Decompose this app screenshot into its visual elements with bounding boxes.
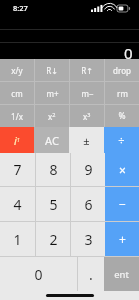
button[interactable]: % — [105, 105, 139, 127]
staticText: 5 — [49, 195, 58, 214]
staticText: x2 — [48, 111, 56, 122]
button[interactable]: rm — [105, 82, 139, 104]
button[interactable]: drop — [105, 59, 139, 81]
staticText: 8 — [49, 160, 58, 179]
button[interactable]: Subtract — [105, 187, 139, 221]
staticText: % — [118, 110, 126, 122]
button[interactable]: x3 — [70, 105, 104, 127]
staticText: ent — [114, 268, 129, 281]
staticText: ± — [83, 133, 90, 148]
button[interactable]: Inverse — [0, 127, 34, 153]
staticText: 9 — [84, 160, 93, 179]
staticText: m+ — [46, 88, 59, 99]
staticText: 3 — [84, 230, 93, 249]
button[interactable]: m+ — [35, 82, 69, 104]
staticText: − — [119, 196, 126, 212]
button[interactable]: 2 — [36, 222, 70, 256]
staticText: x3 — [83, 111, 91, 122]
staticText: 4 — [13, 195, 22, 214]
button[interactable]: x2 — [35, 105, 69, 127]
staticText: cm — [11, 88, 23, 99]
button[interactable]: 1 — [0, 222, 35, 256]
staticText: m− — [81, 88, 94, 99]
button[interactable]: cm — [0, 82, 34, 104]
staticText: + — [119, 231, 126, 247]
button[interactable]: ± — [69, 127, 104, 153]
staticText: x/y — [11, 65, 23, 76]
button[interactable]: 3 — [71, 222, 105, 256]
button[interactable]: 8 — [36, 153, 70, 186]
button[interactable]: 6 — [71, 187, 105, 221]
button[interactable]: 1/x — [0, 105, 34, 127]
button[interactable]: 0 — [0, 257, 77, 291]
button[interactable]: R↑ — [70, 59, 104, 81]
staticText: 8:27 — [13, 3, 28, 13]
button[interactable]: 7 — [0, 153, 35, 186]
button[interactable]: R↓ — [35, 59, 69, 81]
button[interactable]: m− — [70, 82, 104, 104]
staticText: rm — [117, 88, 128, 99]
button[interactable]: 9 — [71, 153, 105, 186]
staticText: × — [119, 162, 126, 178]
staticText: R↓ — [46, 65, 58, 76]
staticText: . — [89, 265, 93, 284]
button[interactable]: AC — [34, 127, 69, 153]
button[interactable]: 4 — [0, 187, 35, 221]
staticText: 7 — [13, 160, 22, 179]
staticText: 2 — [49, 230, 58, 249]
button[interactable]: Multiply — [105, 153, 139, 186]
staticText: 1 — [13, 230, 22, 249]
button[interactable]: 5 — [36, 187, 70, 221]
staticText: 0 — [34, 265, 43, 284]
staticText: AC — [45, 133, 59, 148]
button[interactable]: . — [78, 257, 104, 291]
staticText: 6 — [84, 195, 93, 214]
staticText: ÷ — [118, 133, 125, 148]
button[interactable]: x/y — [0, 59, 34, 81]
button[interactable]: Divide — [104, 127, 139, 153]
staticText: 1/x — [11, 111, 23, 122]
button[interactable]: Add — [105, 222, 139, 256]
staticText: drop — [113, 65, 131, 76]
staticText: i1 — [14, 133, 20, 148]
staticText: R↑ — [81, 65, 93, 76]
button[interactable]: ent — [104, 257, 139, 291]
staticText: 0 — [124, 43, 133, 59]
